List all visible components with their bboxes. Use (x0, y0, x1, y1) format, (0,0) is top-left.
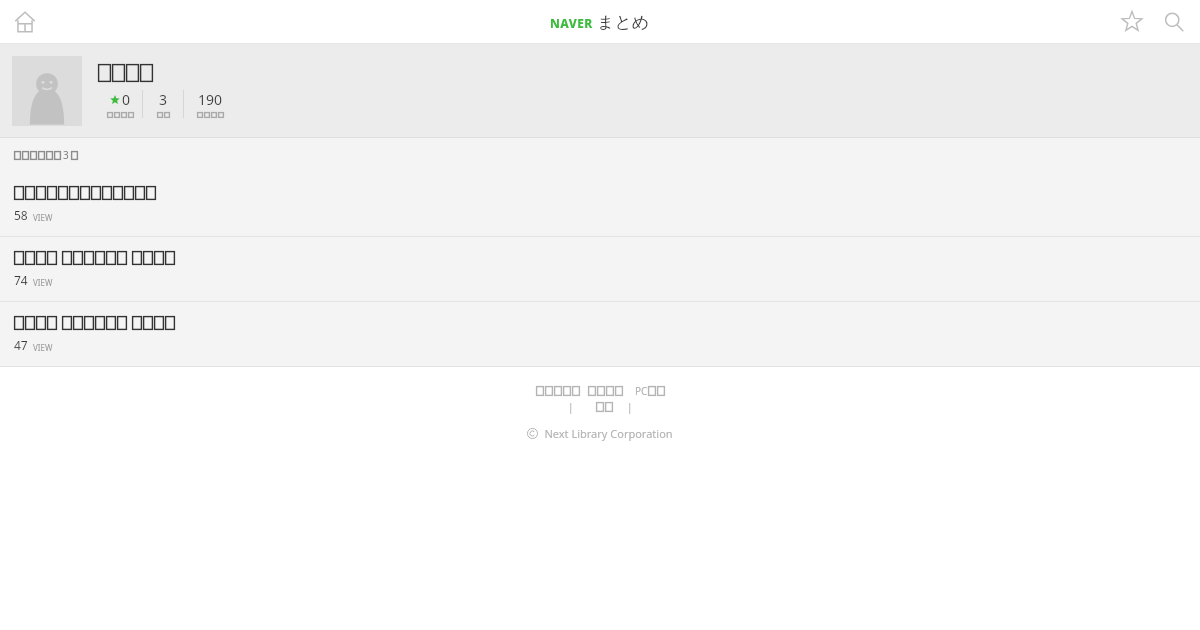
staticText: まとめ (597, 12, 650, 33)
button[interactable] (98, 64, 153, 82)
staticText: | (627, 400, 633, 414)
button[interactable]: 0 (98, 90, 142, 118)
button[interactable]: NAVER (550, 12, 650, 33)
staticText: 190 (198, 90, 223, 109)
button[interactable]: 190 (184, 90, 236, 118)
button[interactable]: 3 (143, 90, 183, 118)
button[interactable] (588, 386, 623, 396)
button[interactable]: 58 (0, 172, 1200, 236)
button[interactable]: 47 (0, 302, 1200, 366)
staticText: 58 (14, 207, 28, 223)
button[interactable]: PC (635, 384, 665, 398)
button[interactable]: Search (1160, 8, 1188, 36)
button[interactable] (536, 386, 580, 396)
staticText: VIEW (33, 342, 53, 353)
staticText: 3 (63, 148, 69, 162)
staticText: 74 (14, 272, 28, 288)
staticText: VIEW (33, 212, 53, 223)
staticText: VIEW (33, 277, 53, 288)
staticText: Next Library Corporation (544, 426, 673, 441)
button[interactable]: 74 (0, 237, 1200, 301)
staticText: PC (635, 384, 648, 398)
staticText: 3 (159, 90, 168, 109)
staticText: 47 (14, 337, 28, 353)
button[interactable] (596, 402, 613, 412)
staticText: NAVER (550, 15, 593, 31)
button[interactable]: Profile image (12, 56, 82, 126)
button[interactable]: Home (12, 9, 38, 35)
staticText: | (568, 400, 574, 414)
button[interactable]: Favorites (1118, 8, 1146, 36)
staticText: 0 (122, 90, 131, 109)
